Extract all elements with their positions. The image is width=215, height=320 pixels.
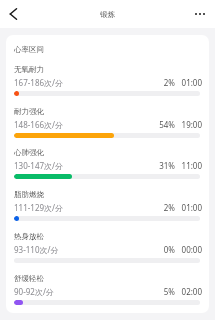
staticText: 2% bbox=[135, 77, 175, 88]
staticText: 00:00 bbox=[150, 244, 202, 255]
button[interactable]: 脂肪燃烧 bbox=[6, 190, 209, 231]
staticText: 111-129次/分 bbox=[14, 202, 64, 213]
staticText: 148-166次/分 bbox=[14, 119, 64, 130]
staticText: 02:00 bbox=[150, 286, 202, 297]
staticText: 舒缓轻松 bbox=[14, 274, 44, 283]
button[interactable]: 心肺强化 bbox=[6, 148, 209, 189]
button[interactable]: 更多 bbox=[190, 4, 210, 24]
staticText: 热身放松 bbox=[14, 232, 44, 241]
staticText: 90-92次/分 bbox=[14, 286, 54, 297]
staticText: 93-110次/分 bbox=[14, 244, 59, 255]
staticText: 心肺强化 bbox=[14, 148, 44, 157]
staticText: 54% bbox=[135, 119, 175, 130]
staticText: 5% bbox=[135, 286, 175, 297]
button[interactable]: 热身放松 bbox=[6, 232, 209, 273]
staticText: 锻炼 bbox=[100, 10, 115, 19]
staticText: 无氧耐力 bbox=[14, 65, 44, 74]
staticText: 167-186次/分 bbox=[14, 77, 64, 88]
button[interactable]: 耐力强化 bbox=[6, 107, 209, 148]
staticText: 01:00 bbox=[150, 77, 202, 88]
staticText: 31% bbox=[135, 160, 175, 171]
staticText: 2% bbox=[135, 202, 175, 213]
staticText: 心率区间 bbox=[14, 45, 44, 54]
staticText: 耐力强化 bbox=[14, 107, 44, 116]
button[interactable]: 无氧耐力 bbox=[6, 65, 209, 106]
staticText: 脂肪燃烧 bbox=[14, 190, 44, 199]
staticText: 0% bbox=[135, 244, 175, 255]
staticText: 19:00 bbox=[150, 119, 202, 130]
staticText: 11:00 bbox=[150, 160, 202, 171]
button[interactable]: 舒缓轻松 bbox=[6, 274, 209, 313]
button[interactable]: 返回 bbox=[3, 4, 23, 24]
staticText: 01:00 bbox=[150, 202, 202, 213]
staticText: 130-147次/分 bbox=[14, 160, 64, 171]
